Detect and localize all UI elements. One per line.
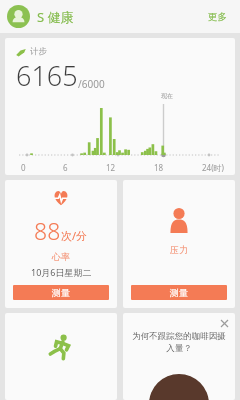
- staticText: S 健康: [37, 8, 74, 26]
- staticText: 测量: [52, 287, 70, 298]
- button[interactable]: 88: [5, 180, 117, 308]
- staticText: 10月6日星期二: [31, 266, 92, 278]
- staticText: 计步: [30, 46, 47, 57]
- staticText: 心率: [52, 251, 70, 262]
- staticText: 88: [34, 215, 61, 246]
- staticText: 12: [106, 162, 116, 173]
- button[interactable]: Profile: [7, 5, 30, 28]
- staticText: 6: [63, 162, 68, 173]
- button[interactable]: 计步: [5, 38, 235, 175]
- staticText: 压力: [170, 244, 188, 255]
- staticText: 次/分: [61, 228, 88, 243]
- staticText: 6165: [16, 57, 78, 94]
- staticText: 为何不跟踪您的咖啡因摄入量？: [129, 331, 229, 353]
- staticText: 18: [154, 162, 164, 173]
- button[interactable]: [5, 313, 117, 400]
- button[interactable]: Close: [219, 318, 230, 329]
- staticText: 0: [21, 162, 26, 173]
- button[interactable]: 测量: [13, 285, 109, 300]
- button[interactable]: Close: [123, 313, 235, 400]
- button[interactable]: 更多: [205, 8, 230, 26]
- button[interactable]: 压力: [123, 180, 235, 308]
- staticText: 24(时): [202, 162, 224, 173]
- staticText: 更多: [208, 11, 227, 23]
- staticText: 测量: [170, 287, 188, 298]
- button[interactable]: 测量: [131, 285, 227, 300]
- staticText: /6000: [78, 77, 105, 91]
- staticText: 现在: [161, 92, 173, 100]
